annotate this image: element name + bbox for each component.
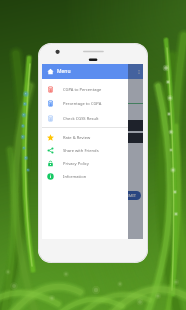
button[interactable]: SUBMIT bbox=[115, 191, 141, 200]
staticText: Share with Friends bbox=[63, 148, 99, 154]
staticText: Percentage to CGPA bbox=[63, 101, 102, 107]
staticText: Check CGSS Result bbox=[63, 116, 99, 122]
staticText: CGPA to Percentage bbox=[63, 87, 102, 93]
staticText: Rate & Review bbox=[63, 135, 91, 141]
button[interactable]: CGPA to Percentage bbox=[42, 83, 128, 96]
button[interactable]: Privacy Policy bbox=[42, 157, 128, 170]
button[interactable]: Menu bbox=[42, 64, 128, 79]
staticText: Privacy Policy bbox=[63, 161, 89, 167]
button[interactable]: Rate & Review bbox=[42, 131, 128, 144]
button[interactable]: Information bbox=[42, 170, 128, 183]
button[interactable]: Check CGSS Result bbox=[42, 112, 128, 125]
button[interactable]: Percentage to CGPA bbox=[42, 97, 128, 110]
staticText: SUBMIT bbox=[121, 193, 136, 198]
button[interactable]: More options bbox=[134, 65, 143, 78]
staticText: Information bbox=[63, 174, 87, 180]
staticText: Menu bbox=[57, 68, 71, 75]
button[interactable]: Share with Friends bbox=[42, 144, 128, 157]
